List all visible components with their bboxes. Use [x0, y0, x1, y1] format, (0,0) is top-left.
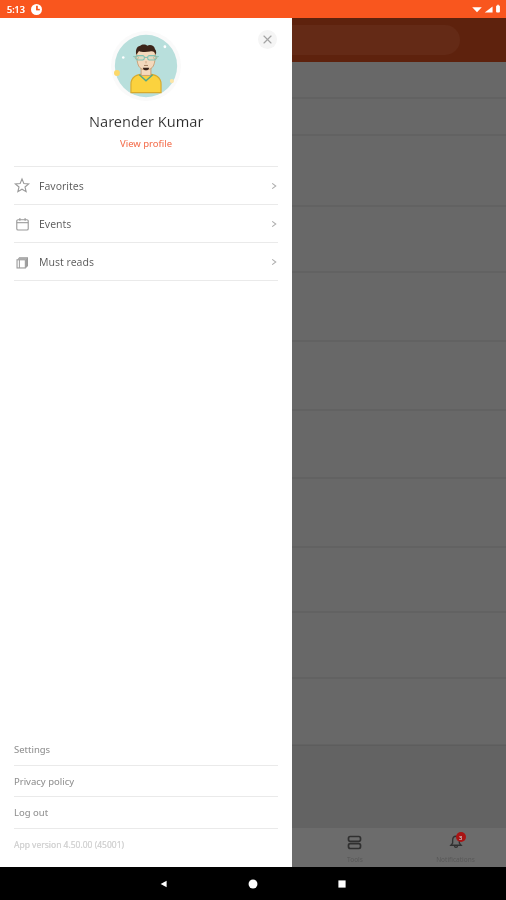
button[interactable]: Close — [258, 30, 277, 49]
button[interactable]: Privacy policy — [0, 766, 292, 796]
button[interactable]: Home — [247, 878, 259, 890]
staticText: 5:13 — [7, 3, 25, 15]
button[interactable]: Tools — [304, 828, 405, 867]
button[interactable]: Recents — [336, 878, 348, 890]
button[interactable]: Saved — [203, 828, 304, 867]
staticText: App version 4.50.00 (45001) — [14, 839, 125, 851]
staticText: Privacy policy — [14, 775, 75, 788]
button[interactable]: Events — [0, 205, 292, 242]
button[interactable]: Settings — [0, 734, 292, 765]
staticText: Favorites — [39, 179, 84, 193]
button[interactable]: Search — [102, 828, 203, 867]
button[interactable]: Back — [158, 878, 170, 890]
staticText: Notifications — [436, 855, 475, 864]
staticText: Must reads — [39, 255, 94, 269]
staticText: Settings — [14, 743, 51, 756]
button[interactable]: 3 — [405, 828, 506, 867]
staticText: Events — [39, 217, 72, 231]
button[interactable]: Log out — [0, 797, 292, 828]
button[interactable]: Must reads — [0, 243, 292, 280]
staticText: Narender Kumar — [89, 111, 204, 131]
staticText: Log out — [14, 806, 49, 819]
button[interactable]: Close navigation drawer — [0, 62, 506, 828]
button[interactable]: View profile — [114, 135, 179, 152]
staticText: 3 — [459, 834, 463, 841]
button[interactable]: Favorites — [0, 167, 292, 204]
staticText: Tools — [347, 855, 363, 864]
button[interactable]: Home — [0, 828, 102, 867]
